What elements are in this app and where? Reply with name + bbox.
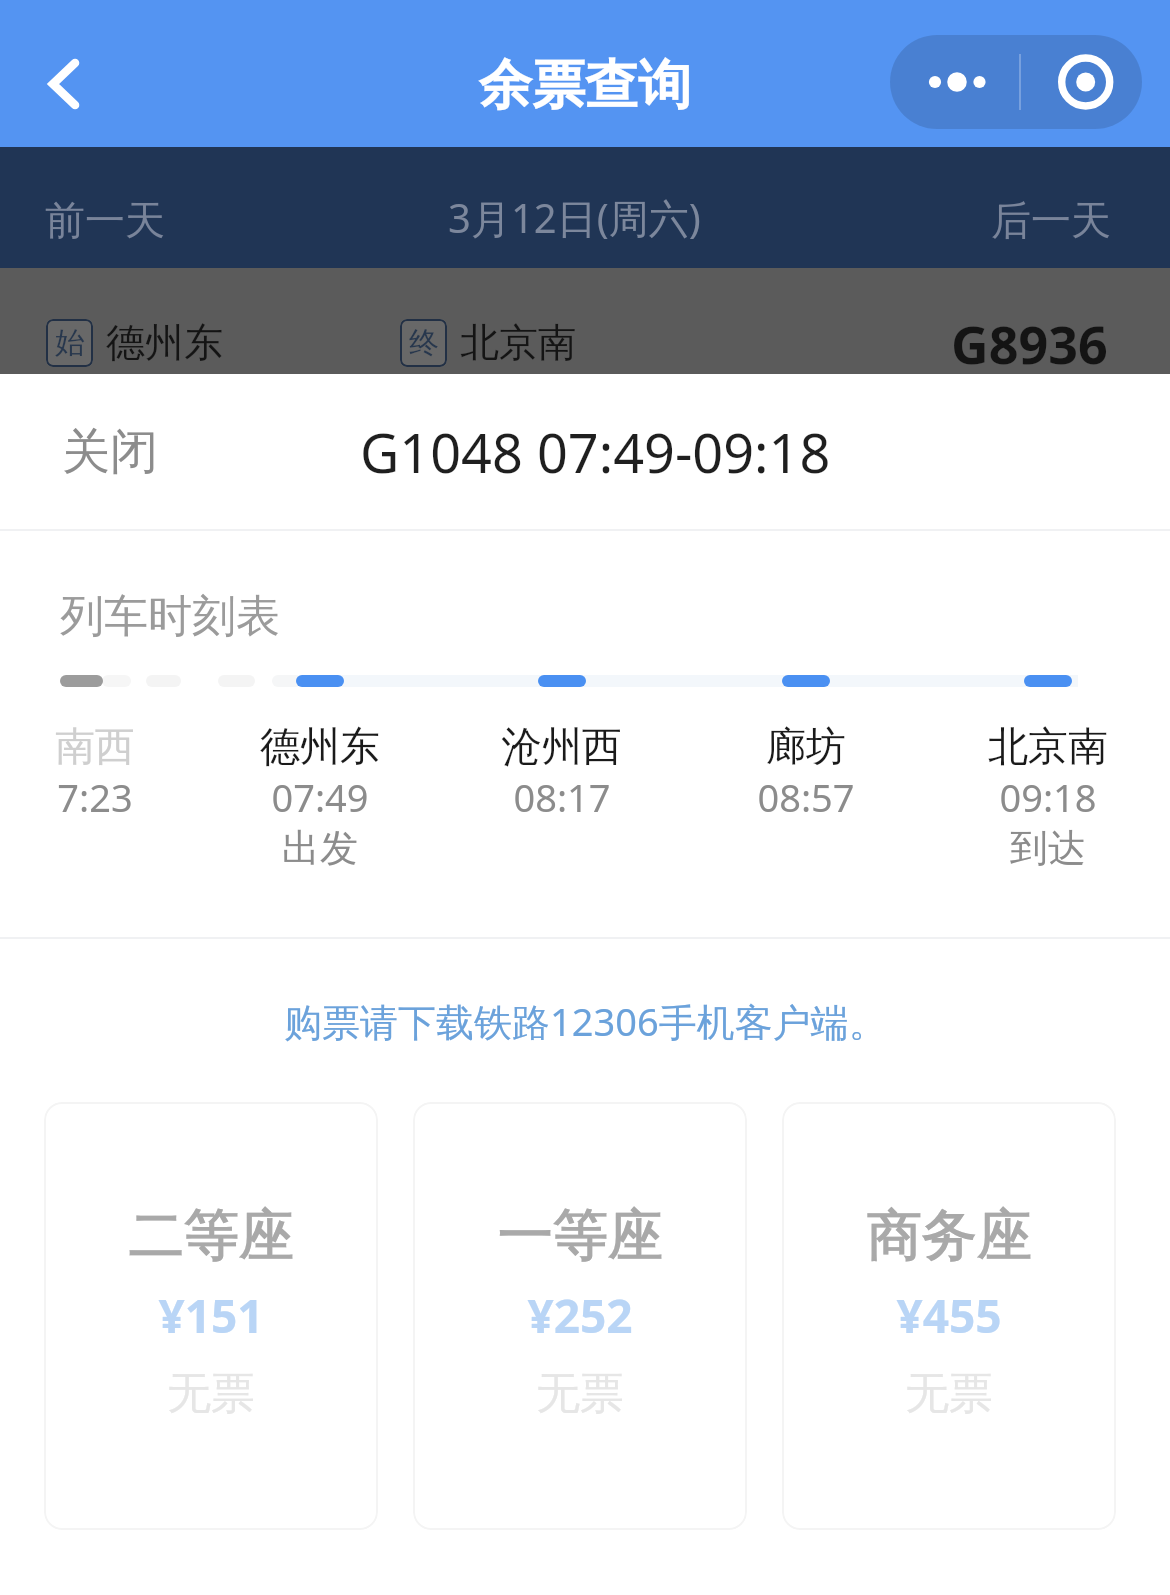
staticText: 07:49 [271,771,369,823]
staticText: 廊坊 [766,721,846,771]
staticText: 到达 [1010,824,1086,872]
staticText: 无票 [905,1366,993,1421]
button[interactable]: 二等座 [44,1102,378,1530]
staticText: 09:18 [999,771,1097,823]
staticText: 二等座 [129,1201,294,1270]
staticText: 商务座 [867,1201,1032,1270]
staticText: ¥252 [527,1284,633,1347]
staticText: 08:17 [513,771,611,823]
staticText: ¥455 [896,1284,1002,1347]
staticText: 一等座 [498,1201,663,1270]
staticText: 沧州西 [502,721,622,771]
button[interactable]: 商务座 [782,1102,1116,1530]
staticText: 7:23 [57,771,133,823]
staticText: 德州东 [260,721,380,771]
staticText: 出发 [282,824,358,872]
button[interactable]: 一等座 [413,1102,747,1530]
button[interactable]: Back [20,32,108,136]
staticText: 余票查询 [479,52,691,119]
staticText: 无票 [167,1366,255,1421]
staticText: 始 [55,324,85,362]
staticText: 南西 [55,721,135,771]
staticText: 无票 [536,1366,624,1421]
staticText: 08:57 [757,771,855,823]
staticText: 终 [409,324,439,362]
staticText: ¥151 [158,1284,264,1347]
staticText: 二等座 [129,1201,294,1270]
staticText: 3月12日(周六) [448,190,701,245]
staticText: 德州东 [106,318,223,367]
button[interactable]: 前一天 [0,181,195,259]
staticText: 关闭 [62,422,158,482]
staticText: 北京南 [988,721,1108,771]
staticText: G1048 07:49-09:18 [360,415,831,489]
button[interactable]: 后一天 [961,181,1170,259]
button[interactable]: Menu [890,35,1142,129]
staticText: 北京南 [460,318,577,367]
staticText: 商务座 [867,1201,1032,1270]
button[interactable]: 购票请下载铁路12306手机客户端。 [272,983,899,1059]
staticText: G8936 [951,308,1108,379]
staticText: 一等座 [498,1201,663,1270]
staticText: 列车时刻表 [60,589,280,644]
